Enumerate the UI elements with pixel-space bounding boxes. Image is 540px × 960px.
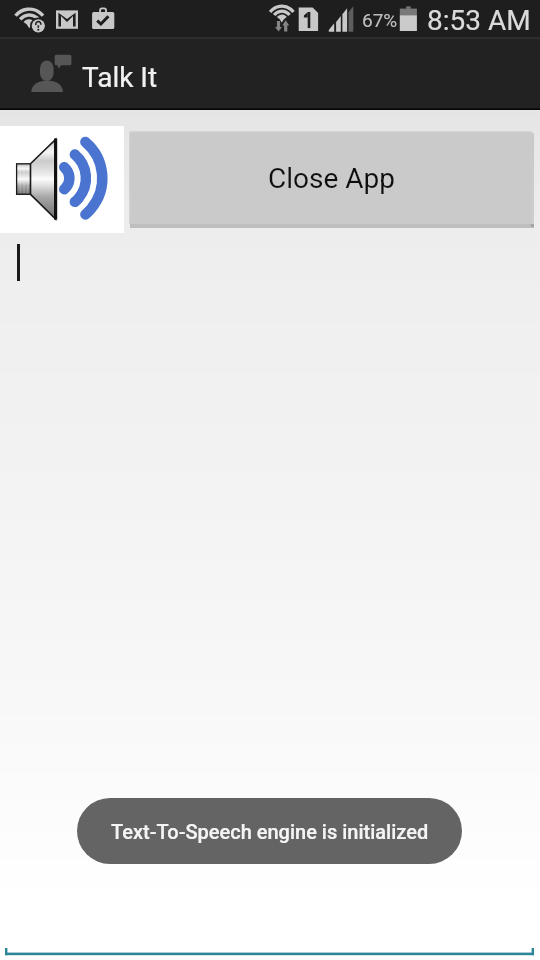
staticText: 8:53 AM bbox=[427, 4, 531, 37]
button[interactable]: Talk It bbox=[26, 50, 76, 100]
staticText: 67% bbox=[362, 9, 398, 31]
button[interactable]: Speak text bbox=[0, 126, 124, 233]
staticText: Close App bbox=[268, 162, 395, 195]
button[interactable]: Close App bbox=[129, 131, 534, 228]
staticText: Talk It bbox=[82, 61, 158, 94]
staticText: Text-To-Speech engine is initialized bbox=[111, 820, 429, 843]
